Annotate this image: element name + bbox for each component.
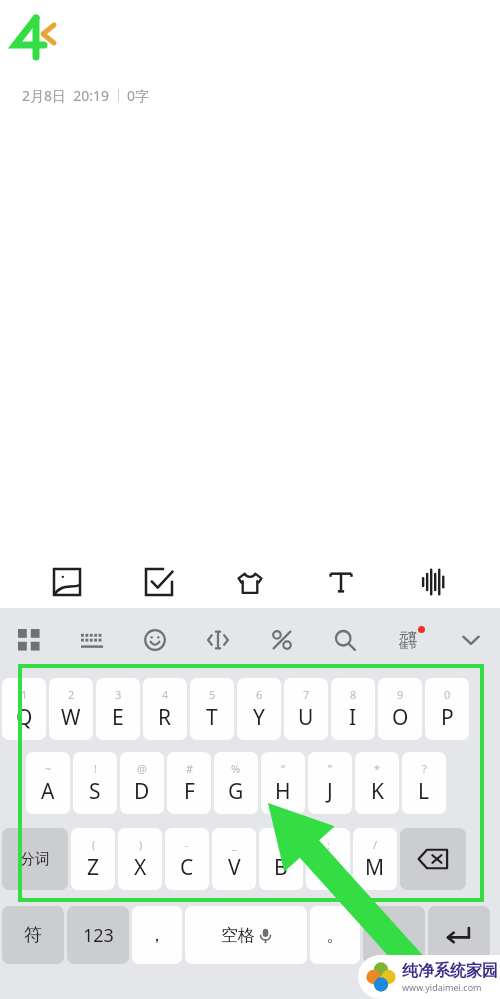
button[interactable]: 1 (2, 678, 46, 740)
staticText: 3 (115, 687, 122, 702)
button[interactable]: 元宵 佳节 (391, 623, 425, 657)
button[interactable]: Cursor (201, 623, 235, 657)
staticText: “ (281, 761, 285, 776)
button[interactable]: ? (402, 752, 446, 814)
button[interactable]: Clip (265, 623, 299, 657)
staticText: 4 (162, 687, 169, 702)
staticText: G (228, 777, 244, 806)
button[interactable]: Search (328, 623, 362, 657)
staticText: 分词 (20, 850, 50, 869)
staticText: 元宵 佳节 (399, 630, 417, 651)
staticText: P (441, 703, 454, 732)
staticText: 中 (386, 925, 403, 946)
button[interactable]: 2 (49, 678, 93, 740)
button[interactable]: Text format (317, 558, 365, 606)
staticText: - (185, 837, 189, 852)
staticText: Z (87, 853, 100, 882)
button[interactable]: ， (132, 906, 182, 964)
staticText: R (158, 703, 172, 732)
button[interactable]: ” (308, 752, 352, 814)
button[interactable]: # (167, 752, 211, 814)
staticText: 123 (83, 923, 114, 948)
staticText: T (206, 703, 218, 732)
staticText: 1 (21, 687, 28, 702)
button[interactable]: 分词 (2, 828, 68, 890)
button[interactable]: ~ (26, 752, 70, 814)
staticText: ; (327, 837, 330, 852)
staticText: * (374, 761, 381, 776)
staticText: 7 (303, 687, 310, 702)
staticText: ? (422, 761, 427, 776)
staticText: Q (16, 703, 33, 732)
button[interactable]: * (355, 752, 399, 814)
staticText: @ (137, 761, 147, 776)
button[interactable]: ; (306, 828, 350, 890)
button[interactable]: ( (71, 828, 115, 890)
button[interactable]: @ (120, 752, 164, 814)
staticText: N (320, 853, 336, 882)
button[interactable]: ) (118, 828, 162, 890)
staticText: U (298, 703, 314, 732)
button[interactable]: 3 (96, 678, 140, 740)
button[interactable]: Image (43, 558, 91, 606)
staticText: 8 (350, 687, 357, 702)
staticText: S (89, 777, 101, 806)
button[interactable]: 8 (331, 678, 375, 740)
staticText: 纯净系统家园 (402, 961, 498, 981)
staticText: Y (253, 703, 265, 732)
button[interactable]: - (165, 828, 209, 890)
staticText: ! (94, 761, 97, 776)
button[interactable]: 空格 (185, 906, 307, 964)
staticText: O (392, 703, 409, 732)
staticText: L (418, 777, 430, 806)
button[interactable]: _ (212, 828, 256, 890)
button[interactable]: Collapse (454, 623, 488, 657)
button[interactable]: 7 (284, 678, 328, 740)
staticText: 5 (209, 687, 216, 702)
staticText: J (327, 777, 333, 806)
staticText: A (41, 777, 55, 806)
staticText: ” (328, 761, 332, 776)
button[interactable]: 符 (2, 906, 64, 964)
button[interactable]: + (259, 828, 303, 890)
button[interactable]: 5 (190, 678, 234, 740)
button[interactable]: Voice (409, 558, 457, 606)
button[interactable]: “ (261, 752, 305, 814)
button[interactable]: Keyboard (75, 623, 109, 657)
staticText: 空格 (221, 925, 255, 946)
staticText: 2 (68, 687, 75, 702)
staticText: 。 (326, 924, 344, 947)
button[interactable]: Backspace (400, 828, 466, 890)
button[interactable]: 4 (143, 678, 187, 740)
button[interactable]: 6 (237, 678, 281, 740)
button[interactable]: 9 (378, 678, 422, 740)
staticText: E (112, 703, 124, 732)
button[interactable]: 。 (310, 906, 360, 964)
button[interactable]: % (214, 752, 258, 814)
staticText: _ (232, 837, 237, 852)
staticText: M (365, 853, 385, 882)
staticText: 0字 (127, 86, 150, 105)
staticText: ~ (45, 761, 52, 776)
staticText: F (184, 777, 195, 806)
button[interactable]: 0 (425, 678, 469, 740)
staticText: C (180, 853, 194, 882)
staticText: K (371, 777, 384, 806)
staticText: www.yidaimei.com (402, 981, 482, 993)
button[interactable]: 123 (67, 906, 129, 964)
staticText: D (134, 777, 150, 806)
staticText: 符 (24, 924, 42, 947)
staticText: 2月8日 20:19 (22, 86, 110, 105)
button[interactable]: ! (73, 752, 117, 814)
staticText: X (134, 853, 147, 882)
button[interactable]: Apps (12, 623, 46, 657)
button[interactable]: Sticker (226, 558, 274, 606)
staticText: 0 (444, 687, 451, 702)
button[interactable]: 中 (363, 906, 425, 964)
staticText: + (278, 837, 285, 852)
staticText: # (186, 761, 194, 776)
button[interactable]: Emoji (138, 623, 172, 657)
button[interactable]: / (353, 828, 397, 890)
button[interactable]: Enter (428, 906, 490, 964)
button[interactable]: Checklist (135, 558, 183, 606)
